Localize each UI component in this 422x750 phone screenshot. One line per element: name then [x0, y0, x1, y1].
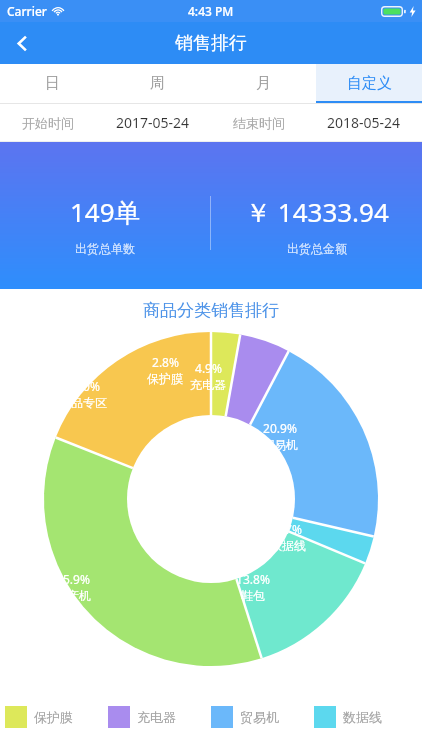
staticText: 数据线 — [270, 538, 306, 553]
staticText: 礼品专区 — [59, 395, 107, 410]
staticText: 充电器 — [190, 377, 226, 392]
staticText: 19.0% — [66, 378, 100, 394]
staticText: 4.9% — [195, 360, 222, 376]
staticText: 周 — [150, 74, 165, 93]
staticText: 数据线 — [343, 709, 382, 725]
button[interactable]: 保护膜 — [5, 706, 108, 728]
button[interactable]: 结束时间 — [211, 104, 306, 141]
button[interactable]: 月 — [210, 64, 316, 103]
button[interactable]: 贸易机 — [211, 706, 314, 728]
staticText: 35.9% — [56, 571, 90, 587]
staticText: 商品分类销售排行 — [143, 300, 279, 321]
button[interactable]: 开始时间 — [0, 104, 95, 141]
staticText: 20.9% — [263, 420, 297, 436]
button[interactable]: 2017-05-24 — [95, 104, 211, 141]
staticText: 开始时间 — [22, 115, 74, 131]
staticText: 销售排行 — [175, 32, 247, 55]
staticText: 4:43 PM — [188, 3, 234, 19]
button[interactable]: 自定义 — [316, 64, 422, 103]
button[interactable]: 周 — [105, 64, 210, 103]
staticText: 鞋包 — [241, 588, 265, 603]
staticText: 结束时间 — [233, 115, 285, 131]
staticText: 充电器 — [137, 709, 176, 725]
staticText: 149单 — [70, 194, 141, 230]
staticText: 贸易机 — [240, 709, 279, 725]
button[interactable]: 日 — [0, 64, 105, 103]
staticText: 出货总金额 — [287, 241, 347, 256]
staticText: 13.8% — [236, 571, 270, 587]
staticText: 保护膜 — [147, 371, 183, 386]
button[interactable]: 2018-05-24 — [306, 104, 422, 141]
staticText: 日 — [45, 74, 60, 93]
staticText: 自定义 — [347, 74, 392, 93]
button[interactable]: 数据线 — [314, 706, 417, 728]
other: 商品分类销售排行环形图 — [0, 332, 422, 668]
staticText: Carrier — [7, 3, 47, 19]
button[interactable]: Back — [0, 22, 44, 64]
staticText: 2017-05-24 — [116, 113, 190, 132]
staticText: 月 — [256, 74, 271, 93]
staticText: 保护膜 — [34, 709, 73, 725]
staticText: 国产机 — [55, 588, 91, 603]
staticText: 2018-05-24 — [327, 113, 401, 132]
button[interactable]: 充电器 — [108, 706, 211, 728]
staticText: 2.8% — [152, 354, 179, 370]
staticText: ￥ 14333.94 — [245, 194, 389, 230]
staticText: 贸易机 — [262, 437, 298, 452]
staticText: 2.7% — [275, 521, 302, 537]
staticText: 出货总单数 — [75, 241, 135, 256]
